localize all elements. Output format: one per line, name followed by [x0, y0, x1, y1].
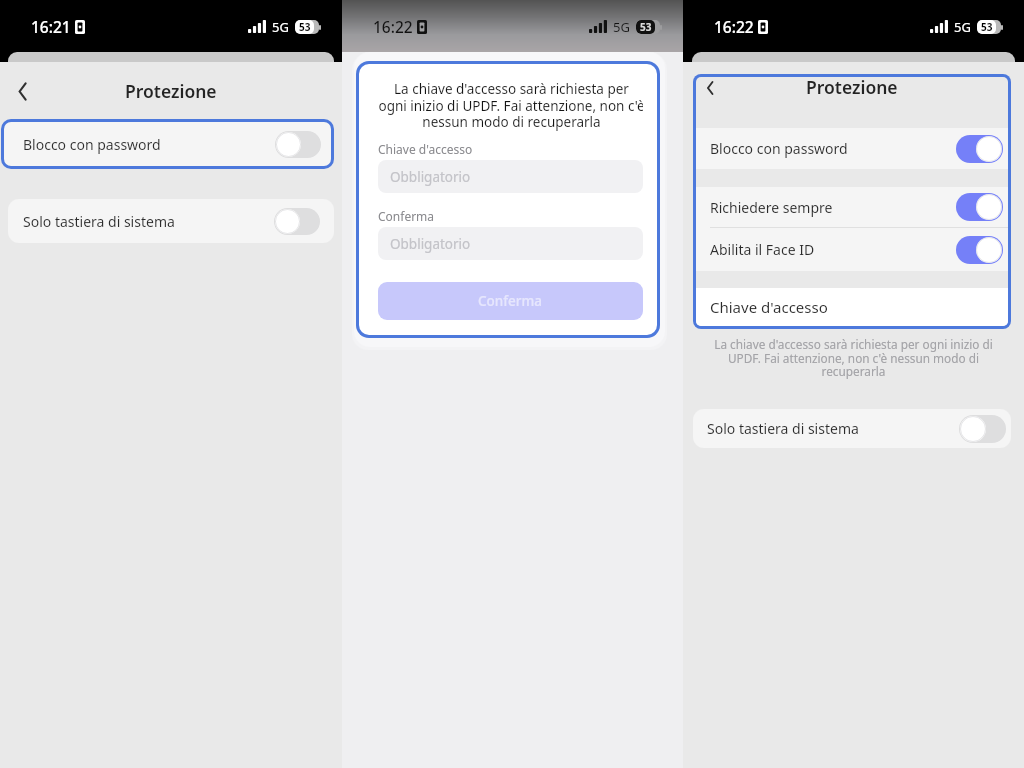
staticText: Richiedere sempre — [710, 198, 833, 217]
staticText: Obbligatorio — [390, 235, 471, 253]
button[interactable]: Toggle, on — [956, 135, 1003, 163]
button[interactable]: Blocco con password — [4, 122, 331, 166]
button[interactable]: Blocco con password — [696, 128, 1008, 169]
staticText: 16:22 — [373, 16, 413, 37]
staticText: 5G — [272, 18, 289, 36]
button[interactable]: Toggle, off — [275, 131, 321, 158]
button[interactable]: Richiedere sempre — [696, 187, 1008, 227]
button[interactable]: Toggle, on — [956, 193, 1003, 221]
staticText: La chiave d'accesso sarà richiesta per o… — [693, 336, 1014, 379]
staticText: Blocco con password — [23, 135, 161, 154]
button[interactable]: Solo tastiera di sistema — [693, 409, 1011, 448]
staticText: 16:22 — [714, 16, 754, 37]
button[interactable]: Toggle, off — [274, 208, 320, 235]
button[interactable]: Obbligatorio — [378, 160, 643, 193]
staticText: Conferma — [378, 208, 643, 224]
staticText: Solo tastiera di sistema — [23, 212, 175, 231]
button[interactable]: Back — [8, 76, 38, 106]
button[interactable]: Abilita il Face ID — [696, 228, 1008, 271]
button[interactable]: Back — [697, 77, 723, 100]
staticText: Abilita il Face ID — [710, 240, 815, 259]
staticText: Protezione — [125, 79, 217, 103]
button[interactable]: Solo tastiera di sistema — [8, 199, 334, 243]
staticText: 53 — [640, 20, 652, 34]
button[interactable]: Obbligatorio — [378, 227, 643, 260]
staticText: La chiave d'accesso sarà richiesta per o… — [378, 80, 643, 131]
staticText: 5G — [613, 18, 630, 36]
staticText: Solo tastiera di sistema — [707, 419, 859, 438]
staticText: 53 — [299, 20, 311, 34]
button[interactable]: Chiave d'accesso — [696, 288, 1008, 326]
button[interactable]: Toggle, off — [959, 415, 1006, 443]
staticText: Chiave d'accesso — [710, 297, 828, 317]
button[interactable]: Conferma — [378, 282, 643, 320]
button[interactable]: Toggle, on — [956, 236, 1003, 264]
staticText: Obbligatorio — [390, 168, 471, 186]
staticText: Protezione — [806, 77, 898, 99]
staticText: 53 — [981, 20, 993, 34]
staticText: Chiave d'accesso — [378, 141, 643, 157]
staticText: 5G — [954, 18, 971, 36]
staticText: Conferma — [478, 292, 543, 310]
staticText: Blocco con password — [710, 139, 848, 158]
staticText: 16:21 — [31, 16, 71, 37]
